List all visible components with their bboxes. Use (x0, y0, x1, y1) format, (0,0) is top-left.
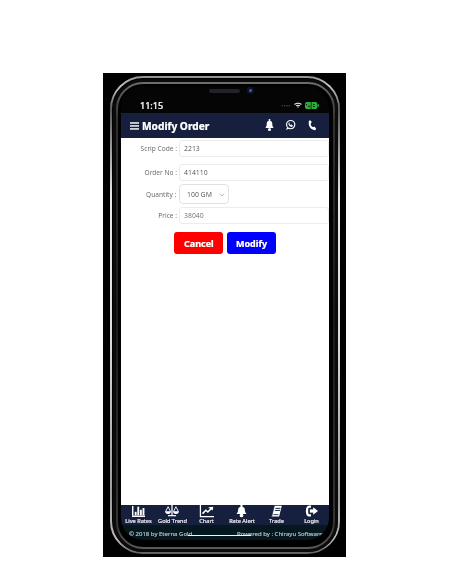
button[interactable]: Modify (227, 232, 276, 254)
button[interactable]: Gold Trend (155, 505, 189, 525)
button[interactable]: Call (304, 117, 318, 135)
staticText: Order No : (144, 168, 177, 177)
staticText: Modify (236, 237, 268, 249)
button[interactable]: Live Rates (121, 505, 155, 525)
staticText: 414110 (184, 168, 208, 177)
staticText: Gold Trend (158, 517, 187, 525)
button[interactable]: Open navigation menu (130, 121, 139, 130)
staticText: Live Rates (125, 517, 152, 525)
staticText: Login (304, 517, 319, 525)
button[interactable]: Trade (259, 505, 294, 525)
staticText: Chart (199, 517, 214, 525)
button[interactable]: 100 GM (179, 184, 229, 204)
staticText: © 2018 by Eterna Gold (129, 530, 193, 538)
button[interactable]: Notifications (262, 117, 276, 135)
staticText: Trade (269, 517, 284, 525)
staticText: 38040 (184, 211, 204, 220)
staticText: Price : (158, 211, 177, 220)
staticText: Modify Order (142, 119, 210, 133)
staticText: 11:15 (140, 99, 164, 111)
staticText: Cancel (184, 237, 214, 249)
staticText: Scrip Code : (140, 144, 177, 153)
button[interactable]: Chart (189, 505, 224, 525)
staticText: 100 GM (187, 190, 212, 199)
staticText: 2213 (184, 144, 200, 153)
button[interactable]: Chat on WhatsApp (283, 117, 297, 135)
button[interactable]: Login (294, 505, 329, 525)
staticText: Quantity : (146, 190, 177, 199)
button[interactable]: Rate Alert (224, 505, 259, 525)
staticText: Powered by : Chirayu Software (237, 530, 323, 538)
staticText: Rate Alert (229, 517, 255, 525)
button[interactable]: Cancel (174, 232, 223, 254)
